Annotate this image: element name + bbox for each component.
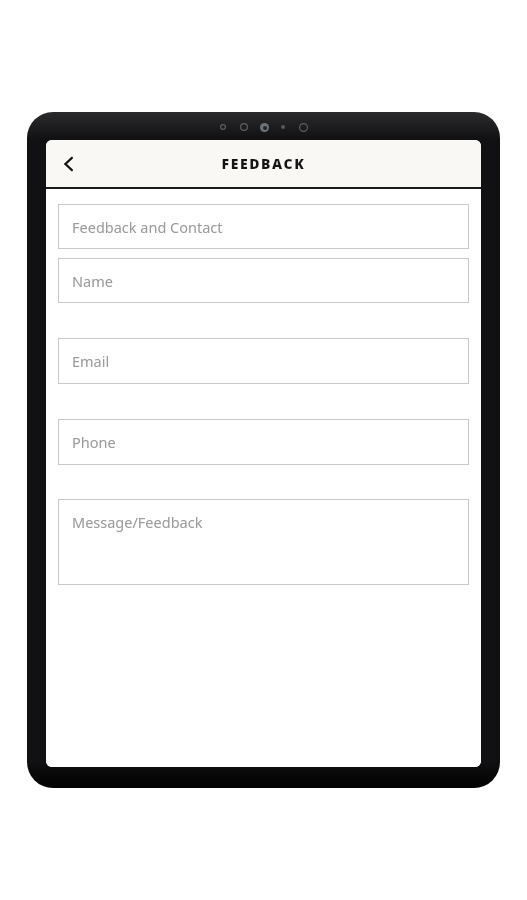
button[interactable]: Email bbox=[58, 338, 469, 384]
button[interactable]: Back bbox=[46, 141, 92, 187]
staticText: Email bbox=[72, 351, 110, 371]
staticText: Message/Feedback bbox=[72, 512, 203, 532]
button[interactable]: Feedback and Contact bbox=[58, 204, 469, 249]
staticText: Name bbox=[72, 271, 113, 291]
button[interactable]: Message/Feedback bbox=[58, 499, 469, 585]
button[interactable]: Name bbox=[58, 258, 469, 303]
staticText: FEEDBACK bbox=[221, 154, 306, 173]
staticText: Phone bbox=[72, 432, 116, 452]
button[interactable]: Phone bbox=[58, 419, 469, 465]
staticText: Feedback and Contact bbox=[72, 217, 223, 237]
